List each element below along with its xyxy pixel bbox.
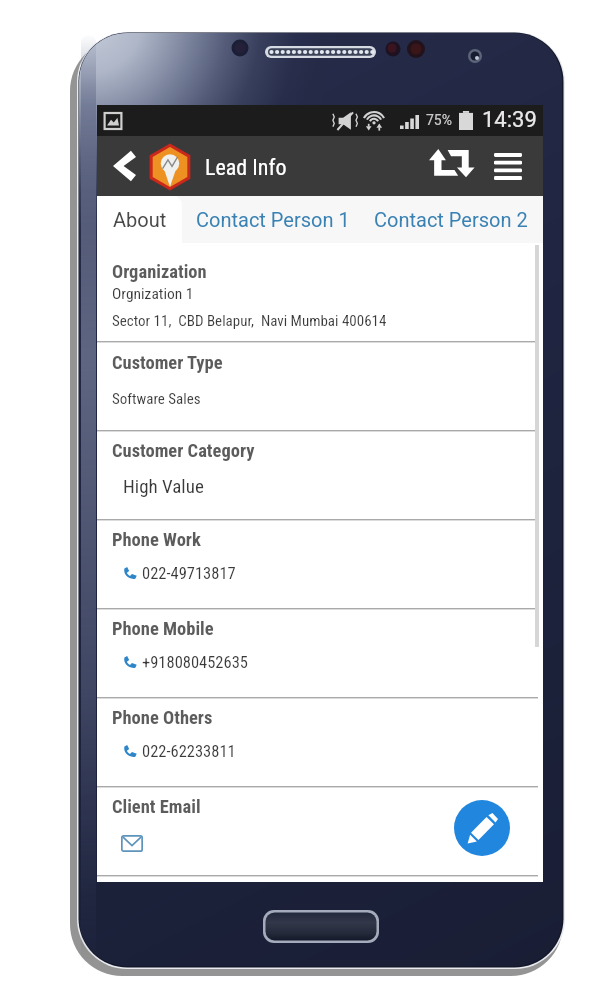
staticText: Sector 11, CBD Belapur, Navi Mumbai 4006… — [112, 312, 387, 330]
staticText: Orgnization 1 — [112, 285, 194, 303]
staticText: Contact Person 1 — [196, 208, 350, 231]
staticText: High Value — [123, 475, 204, 497]
staticText: Organization — [112, 261, 207, 283]
staticText: 75% — [426, 112, 452, 128]
staticText: About — [113, 208, 167, 231]
staticText: Phone Work — [112, 529, 201, 551]
button[interactable]: 022-62233811 — [123, 742, 236, 761]
staticText: Customer Category — [112, 440, 255, 462]
staticText: Phone Others — [112, 707, 213, 729]
button[interactable]: Email — [121, 832, 147, 854]
staticText: 022-62233811 — [142, 742, 236, 761]
button[interactable]: 022-49713817 — [123, 564, 236, 583]
staticText: +918080452635 — [142, 653, 248, 672]
button[interactable]: Edit — [454, 800, 510, 856]
staticText: Lead Info — [205, 155, 287, 181]
staticText: 022-49713817 — [142, 564, 236, 583]
button[interactable]: Contact Person 1 — [182, 196, 363, 243]
button[interactable]: +918080452635 — [123, 653, 248, 672]
staticText: Phone Mobile — [112, 618, 214, 640]
button[interactable]: Back — [103, 142, 145, 190]
staticText: Software Sales — [112, 390, 201, 408]
staticText: Client Email — [112, 796, 201, 818]
button[interactable]: Contact Person 2 — [363, 196, 539, 243]
staticText: Customer Type — [112, 352, 223, 374]
button[interactable]: Menu — [485, 142, 531, 190]
button[interactable]: Sync — [423, 142, 483, 190]
button[interactable]: About — [97, 196, 182, 243]
staticText: Contact Person 2 — [374, 208, 528, 231]
staticText: 14:39 — [482, 107, 537, 133]
